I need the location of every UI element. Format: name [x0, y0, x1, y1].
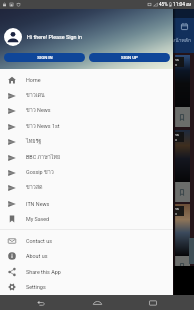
button[interactable]: ไทยรัฐ — [0, 134, 173, 149]
staticText: ข่าวเด่น — [26, 91, 45, 100]
button[interactable]: ข่าว News — [0, 103, 173, 118]
staticText: mins ago — [175, 206, 183, 216]
staticText: mins ago — [175, 132, 183, 142]
button[interactable]: ข่าว News 1st — [0, 119, 173, 134]
button[interactable]: Home — [82, 295, 112, 310]
staticText: Hi there! Please Sign in — [27, 34, 83, 40]
staticText: BBC ภาษาไทย — [26, 153, 61, 162]
button[interactable]: Settings — [0, 279, 173, 294]
staticText: ข่าวสด — [26, 183, 43, 192]
staticText: Home — [26, 77, 41, 83]
button[interactable]: Back — [26, 295, 56, 310]
staticText: SIGN UP — [121, 55, 138, 60]
button[interactable]: mins ago — [175, 55, 190, 127]
button[interactable]: ข่าวเด่น — [0, 88, 173, 103]
button[interactable]: Recent apps — [138, 295, 168, 310]
staticText: Settings — [26, 284, 46, 290]
staticText: Share this App — [26, 269, 61, 275]
staticText: Gossip ข่าว — [26, 168, 54, 177]
button[interactable]: SIGN UP — [89, 53, 170, 62]
button[interactable]: ข่าวสด — [0, 180, 173, 195]
button[interactable]: Gossip ข่าว — [0, 165, 173, 180]
staticText: 11:04 — [173, 2, 185, 8]
button[interactable]: Home — [0, 72, 173, 87]
button[interactable]: mins ago — [175, 130, 190, 202]
button[interactable]: Calendar tab — [181, 23, 188, 30]
button[interactable]: My Saved — [0, 211, 173, 226]
button[interactable]: BBC ภาษาไทย — [0, 150, 173, 165]
staticText: Contact us — [26, 238, 52, 244]
staticText: My Saved — [26, 216, 50, 222]
staticText: หน้าหลัก — [172, 36, 191, 44]
staticText: mins ago — [175, 57, 183, 67]
staticText: ITN News — [26, 201, 50, 207]
button[interactable]: SIGN IN — [4, 53, 85, 62]
button[interactable]: mins ago — [175, 204, 190, 276]
button[interactable]: ITN News — [0, 196, 173, 211]
staticText: ไทยรัฐ — [26, 137, 42, 146]
staticText: ข่าว News — [26, 106, 51, 115]
button[interactable]: Contact us — [0, 233, 173, 248]
staticText: AM — [186, 3, 192, 7]
staticText: ข่าว News 1st — [26, 122, 60, 131]
button[interactable]: Share this App — [0, 264, 173, 279]
staticText: 45% — [159, 2, 168, 7]
staticText: SIGN IN — [37, 55, 53, 60]
button[interactable]: About us — [0, 248, 173, 263]
staticText: About us — [26, 253, 48, 259]
